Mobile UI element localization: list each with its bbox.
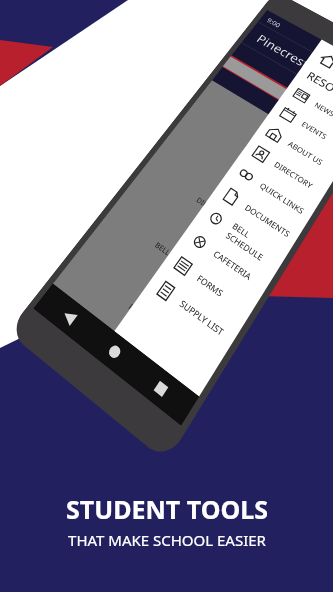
button[interactable]: Home [107, 343, 123, 360]
button[interactable]: FORMS [159, 243, 258, 327]
button[interactable]: CAFETERIA [177, 220, 274, 301]
button[interactable]: Home [316, 50, 333, 72]
staticText: EVENTS [300, 119, 329, 141]
button[interactable]: QUICK LINKS [224, 155, 318, 228]
staticText: FORMS [126, 302, 153, 327]
staticText: Pinecrest [254, 31, 313, 71]
button[interactable]: EVENTS [268, 97, 333, 162]
staticText: DOCUMENTS [243, 202, 292, 239]
staticText: BELL SCHEDULE [224, 220, 288, 274]
button[interactable]: DOCUMENTS [209, 176, 304, 251]
staticText: BELL SCHEDULE [152, 240, 204, 281]
staticText: QUICK LINKS [258, 180, 307, 216]
staticText: NEWS [313, 100, 333, 119]
button[interactable]: Back [60, 308, 78, 326]
staticText: THAT MAKE SCHOOL EASIER [68, 530, 266, 550]
staticText: ABOUT US [286, 139, 325, 167]
staticText: RESOURCES [304, 68, 333, 114]
staticText: DIRECTORY [272, 159, 315, 191]
button[interactable]: NEWS [281, 78, 333, 142]
staticText: DIRECTORY [194, 195, 232, 225]
button[interactable]: Recents [154, 381, 168, 397]
button[interactable]: BELL SCHEDULE [193, 198, 289, 275]
staticText: NEWS [234, 155, 256, 173]
staticText: CAFETERIA [211, 247, 254, 282]
staticText: 9:00 [265, 16, 282, 29]
staticText: SUPPLY LIST [178, 297, 227, 338]
button[interactable]: DIRECTORY [239, 135, 332, 205]
button[interactable]: SUPPLY LIST [142, 267, 242, 354]
staticText: FORMS [195, 272, 226, 299]
button[interactable]: ABOUT US [254, 116, 333, 183]
staticText: STUDENT TOOLS [66, 492, 268, 526]
